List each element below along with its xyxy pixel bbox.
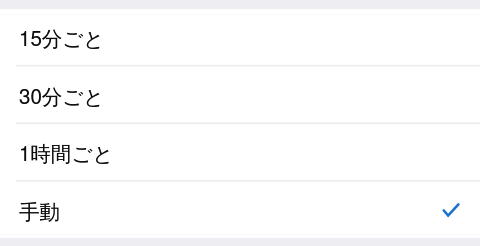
staticText: 1時間ごと (19, 141, 114, 167)
staticText: 1時間ごと (19, 141, 114, 167)
button[interactable]: 手動 (0, 181, 480, 239)
staticText: 30分ごと (19, 84, 105, 110)
button[interactable]: 15分ごと (0, 8, 480, 66)
staticText: 15分ごと (19, 26, 105, 52)
button[interactable]: 1時間ごと (0, 123, 480, 181)
staticText: 15分ごと (19, 26, 105, 52)
staticText: 手動 (19, 199, 60, 225)
other: Selected (443, 204, 459, 216)
staticText: 手動 (19, 199, 60, 225)
button[interactable]: 30分ごと (0, 66, 480, 124)
staticText: 30分ごと (19, 84, 105, 110)
